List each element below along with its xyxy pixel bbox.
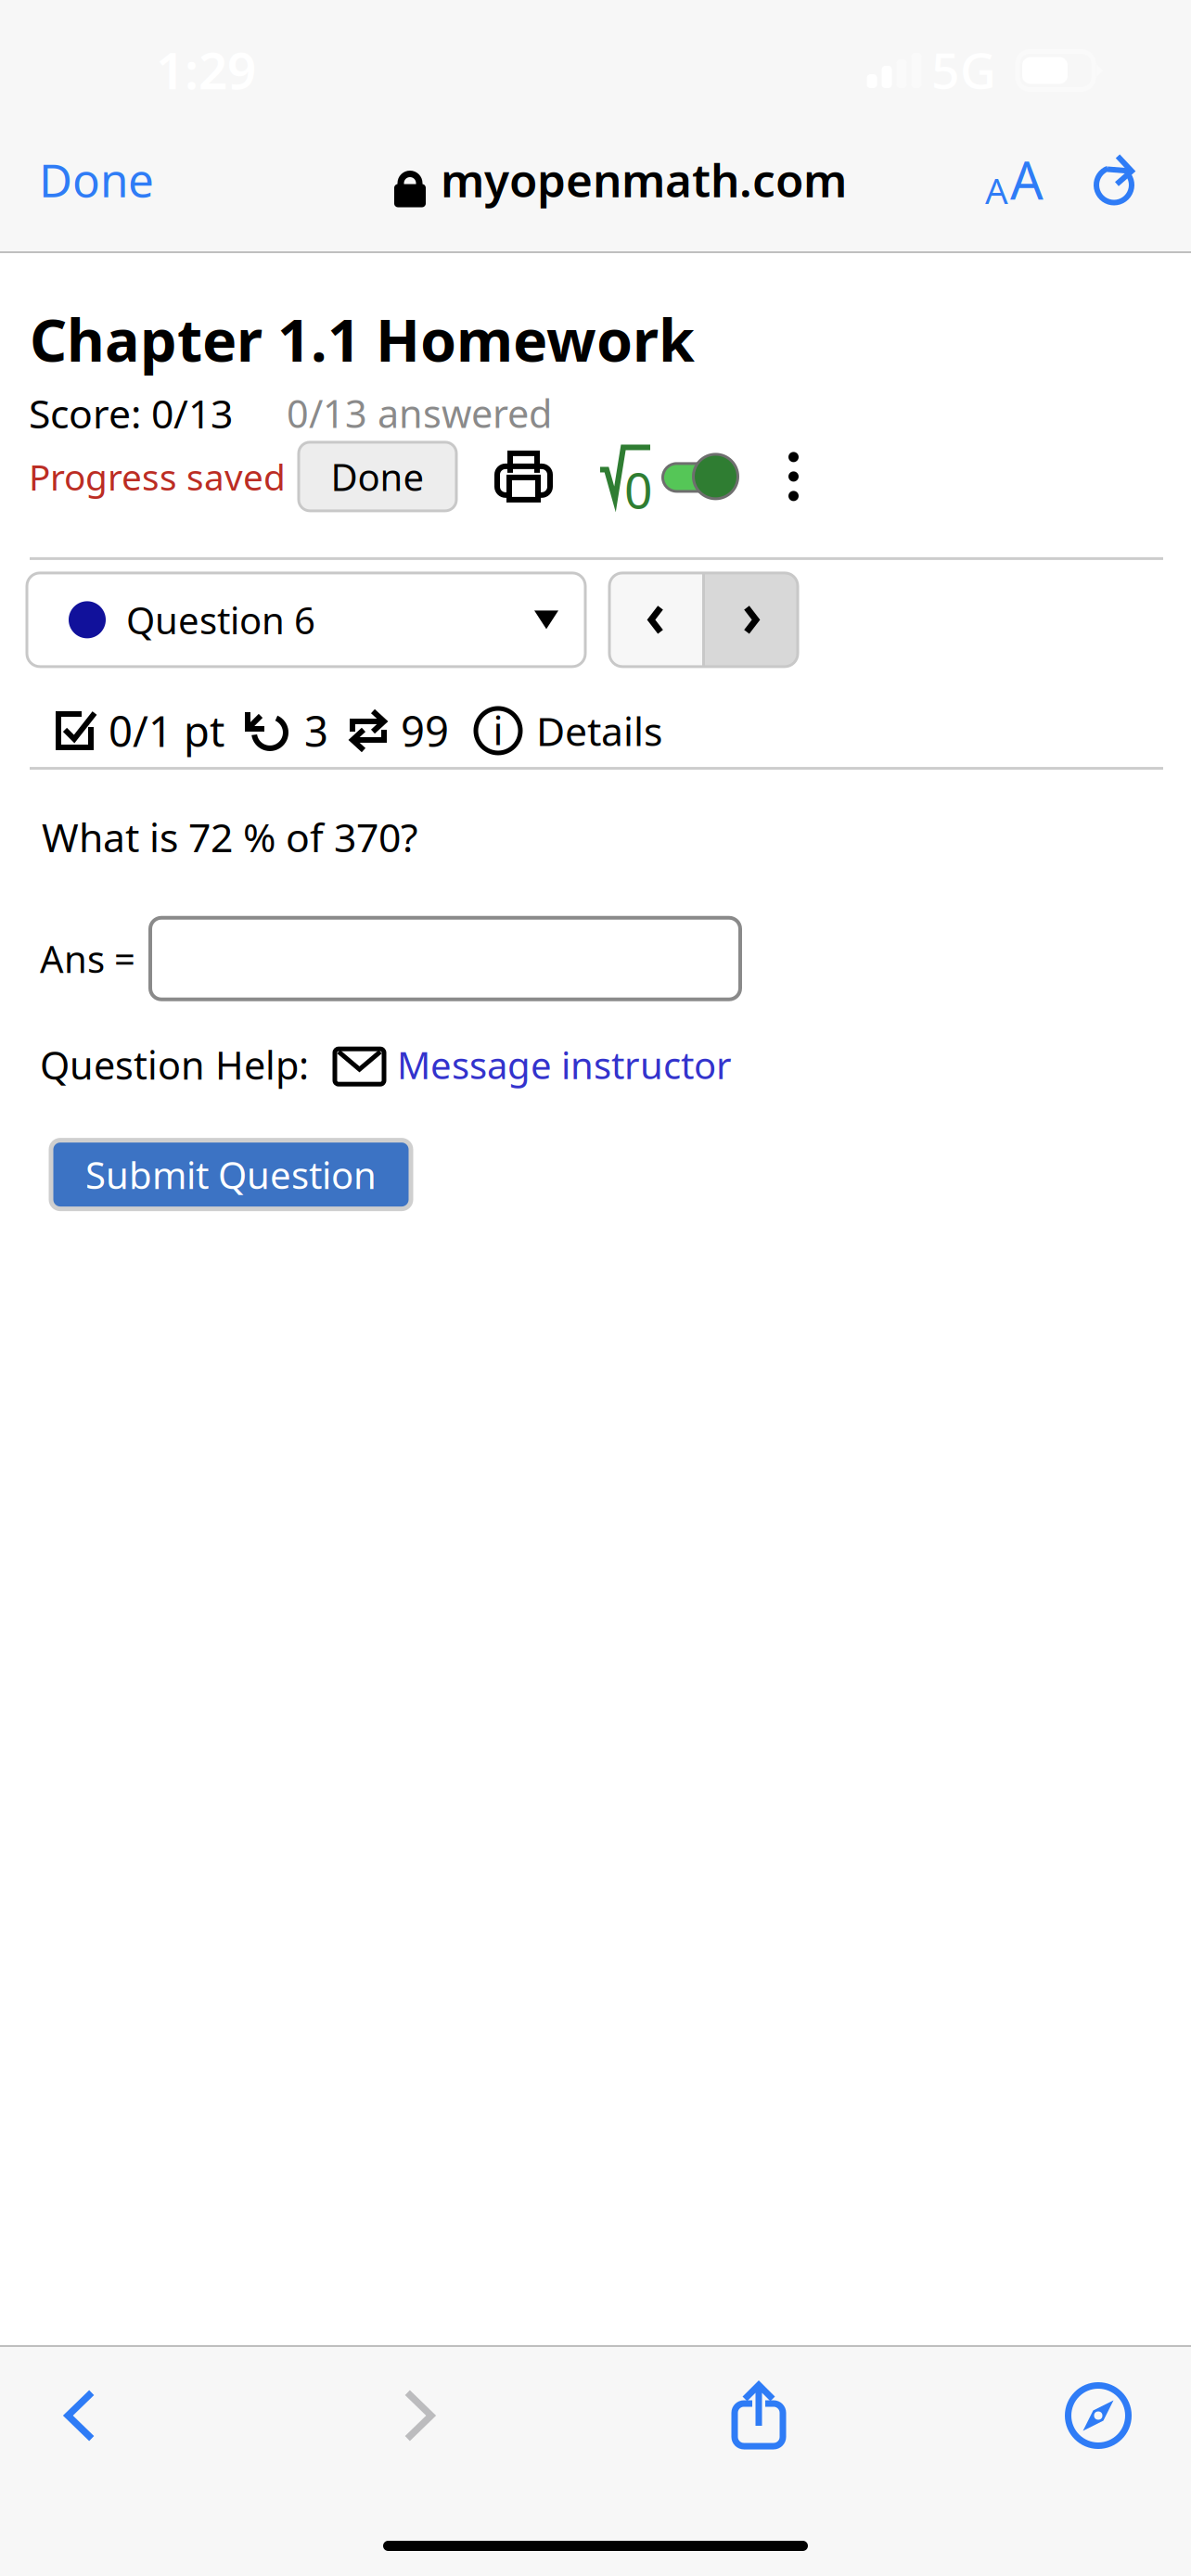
button[interactable]: Next question [705, 573, 798, 667]
button[interactable]: Back [0, 2371, 160, 2460]
button[interactable]: Submit Question [51, 1140, 411, 1209]
button[interactable]: Reload [1046, 128, 1191, 230]
staticText: i [493, 703, 503, 756]
button[interactable]: Math input [598, 446, 652, 507]
button[interactable]: Question 6 [27, 573, 585, 667]
staticText: 99 [401, 703, 449, 759]
staticText: myopenmath.com [441, 149, 847, 210]
button[interactable]: Text size [946, 117, 1046, 242]
staticText: Message instructor [397, 1040, 732, 1089]
button[interactable]: Done [0, 121, 182, 238]
staticText: 1:29 [156, 36, 256, 103]
staticText: Question 6 [126, 595, 315, 644]
staticText: Submit Question [85, 1150, 377, 1199]
staticText: Done [331, 452, 424, 501]
staticText: 0 [624, 457, 653, 522]
staticText: A [1010, 145, 1044, 214]
staticText: 0/13 answered [287, 388, 552, 439]
button[interactable]: Share [679, 2371, 839, 2460]
staticText: 5G [931, 37, 996, 102]
staticText: Details [536, 704, 662, 757]
button[interactable]: Done [299, 442, 456, 511]
staticText: What is 72 % of 370? [42, 811, 418, 863]
button[interactable]: More options [788, 452, 799, 501]
staticText: Ans = [40, 934, 135, 983]
button[interactable]: Previous question [609, 573, 702, 667]
staticText: Done [39, 149, 154, 210]
staticText: Score: 0/13 [29, 387, 233, 439]
button[interactable]: Toggle math input [654, 453, 729, 500]
button[interactable]: Print [497, 451, 550, 502]
button[interactable]: Message instructor [335, 1040, 732, 1089]
button[interactable]: Open in Safari [1018, 2371, 1178, 2460]
staticText: Progress saved [29, 453, 286, 500]
staticText: A [985, 166, 1008, 214]
staticText: Question Help: [40, 1039, 309, 1090]
staticText: Chapter 1.1 Homework [30, 300, 695, 378]
staticText: 0/1 pt [109, 703, 224, 759]
button[interactable]: Forward [339, 2371, 499, 2460]
staticText: 3 [304, 703, 328, 759]
